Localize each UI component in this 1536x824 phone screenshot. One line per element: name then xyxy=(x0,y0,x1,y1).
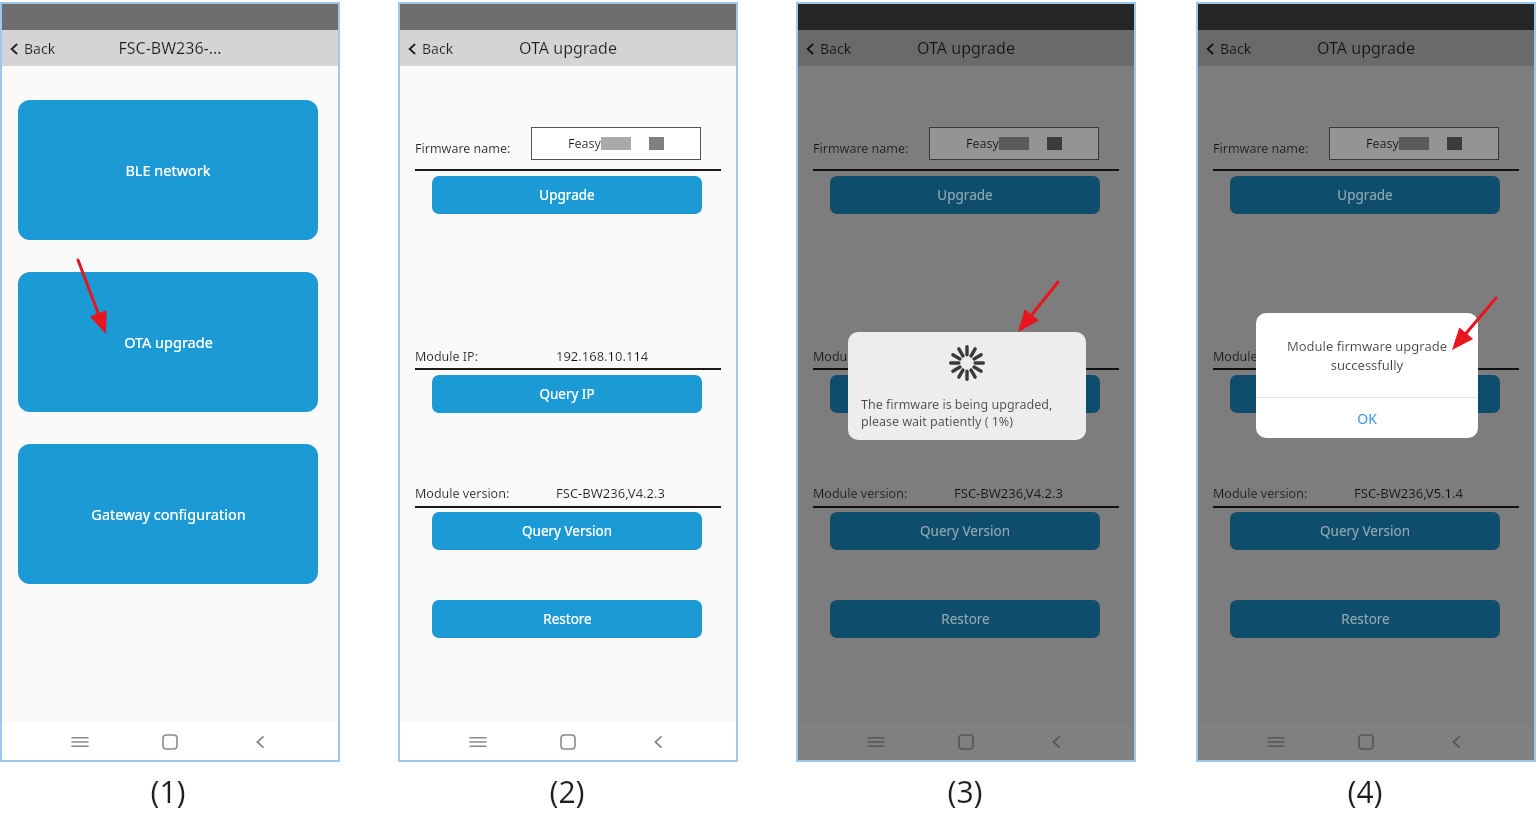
staticText: BLE network xyxy=(125,160,211,180)
staticText: OTA upgrade xyxy=(917,37,1015,59)
button[interactable]: Recent apps xyxy=(433,722,523,762)
button[interactable]: Back xyxy=(8,39,56,58)
staticText: Feasy xyxy=(568,135,601,152)
button[interactable]: Back xyxy=(613,722,703,762)
button[interactable]: Upgrade xyxy=(432,176,702,214)
button[interactable]: Feasy xyxy=(929,127,1099,160)
staticText: The firmware is being upgraded, please w… xyxy=(861,396,1075,430)
staticText: Upgrade xyxy=(539,186,595,204)
staticText: Module IP: xyxy=(415,348,478,365)
staticText: (1) xyxy=(150,771,186,812)
staticText: Query IP xyxy=(539,385,595,403)
staticText: Module firmware upgrade successfully xyxy=(1270,337,1464,374)
staticText: (2) xyxy=(549,771,585,812)
button[interactable]: Feasy xyxy=(1329,127,1499,160)
staticText: OTA upgrade xyxy=(519,37,617,59)
button[interactable]: Query Version xyxy=(1230,512,1500,550)
staticText: Back xyxy=(24,39,56,58)
staticText: Firmware name: xyxy=(415,140,511,157)
staticText: Query Version xyxy=(1320,522,1410,540)
staticText: Upgrade xyxy=(937,186,993,204)
button[interactable]: Recent apps xyxy=(35,722,125,762)
staticText: Gateway configuration xyxy=(91,504,246,524)
staticText: Restore xyxy=(543,610,592,628)
staticText: Firmware name: xyxy=(1213,140,1309,157)
staticText: FSC-BW236,V5.1.4 xyxy=(1354,484,1463,502)
button[interactable]: Restore xyxy=(1230,600,1500,638)
button[interactable]: Query Version xyxy=(830,512,1100,550)
staticText: Module version: xyxy=(813,485,908,502)
button[interactable]: OTA upgrade xyxy=(18,272,318,412)
button[interactable]: Feasy xyxy=(531,127,701,160)
staticText: 192.168.10.114 xyxy=(1354,347,1447,365)
staticText: (3) xyxy=(947,771,983,812)
staticText: Module version: xyxy=(415,485,510,502)
button[interactable]: Query Version xyxy=(432,512,702,550)
staticText: Module version: xyxy=(1213,485,1308,502)
staticText: FSC-BW236,V4.2.3 xyxy=(556,484,665,502)
staticText: Query Version xyxy=(920,522,1010,540)
button[interactable]: Restore xyxy=(432,600,702,638)
staticText: Feasy xyxy=(1366,135,1399,152)
staticText: Upgrade xyxy=(1337,186,1393,204)
staticText: Restore xyxy=(1341,610,1390,628)
staticText: Query IP xyxy=(937,385,993,403)
staticText: Query IP xyxy=(1337,385,1393,403)
button[interactable]: Upgrade xyxy=(830,176,1100,214)
button[interactable]: Upgrade xyxy=(1230,176,1500,214)
staticText: OTA upgrade xyxy=(1317,37,1415,59)
button[interactable]: Back xyxy=(1411,722,1501,762)
button[interactable]: Query IP xyxy=(1230,375,1500,413)
staticText: OK xyxy=(1357,409,1377,428)
staticText: 192.168.10.114 xyxy=(954,347,1047,365)
button[interactable]: Back xyxy=(1204,39,1252,58)
staticText: OTA upgrade xyxy=(124,332,213,352)
staticText: (4) xyxy=(1347,771,1383,812)
staticText: Restore xyxy=(941,610,990,628)
staticText: Firmware name: xyxy=(813,140,909,157)
button[interactable]: Gateway configuration xyxy=(18,444,318,584)
staticText: Query Version xyxy=(522,522,612,540)
staticText: Back xyxy=(820,39,852,58)
staticText: Feasy xyxy=(966,135,999,152)
button[interactable]: Back xyxy=(406,39,454,58)
staticText: Module IP: xyxy=(813,348,876,365)
staticText: Module IP: xyxy=(1213,348,1276,365)
button[interactable]: Back xyxy=(804,39,852,58)
button[interactable]: Query IP xyxy=(830,375,1100,413)
button[interactable]: Back xyxy=(1011,722,1101,762)
button[interactable]: Home xyxy=(921,722,1011,762)
button[interactable]: Home xyxy=(523,722,613,762)
staticText: FSC-BW236-... xyxy=(118,37,222,59)
button[interactable]: Home xyxy=(125,722,215,762)
staticText: 192.168.10.114 xyxy=(556,347,649,365)
button[interactable]: Recent apps xyxy=(831,722,921,762)
staticText: Back xyxy=(1220,39,1252,58)
button[interactable]: Home xyxy=(1321,722,1411,762)
button[interactable]: OK xyxy=(1256,398,1478,438)
button[interactable]: Restore xyxy=(830,600,1100,638)
button[interactable]: BLE network xyxy=(18,100,318,240)
staticText: FSC-BW236,V4.2.3 xyxy=(954,484,1063,502)
staticText: Back xyxy=(422,39,454,58)
button[interactable]: Recent apps xyxy=(1231,722,1321,762)
button[interactable]: Back xyxy=(215,722,305,762)
button[interactable]: Query IP xyxy=(432,375,702,413)
